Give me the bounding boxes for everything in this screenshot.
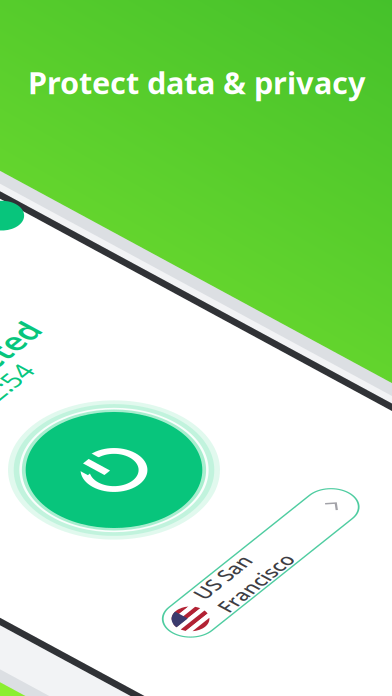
staticText: Protect data & privacy [28, 62, 366, 103]
button[interactable]: Connect [111, 386, 279, 554]
staticText: Connected [135, 290, 289, 329]
button[interactable]: US San Francisco [73, 609, 292, 653]
staticText: US San Francisco [119, 606, 203, 656]
staticText: 00:12:54 [152, 322, 248, 354]
